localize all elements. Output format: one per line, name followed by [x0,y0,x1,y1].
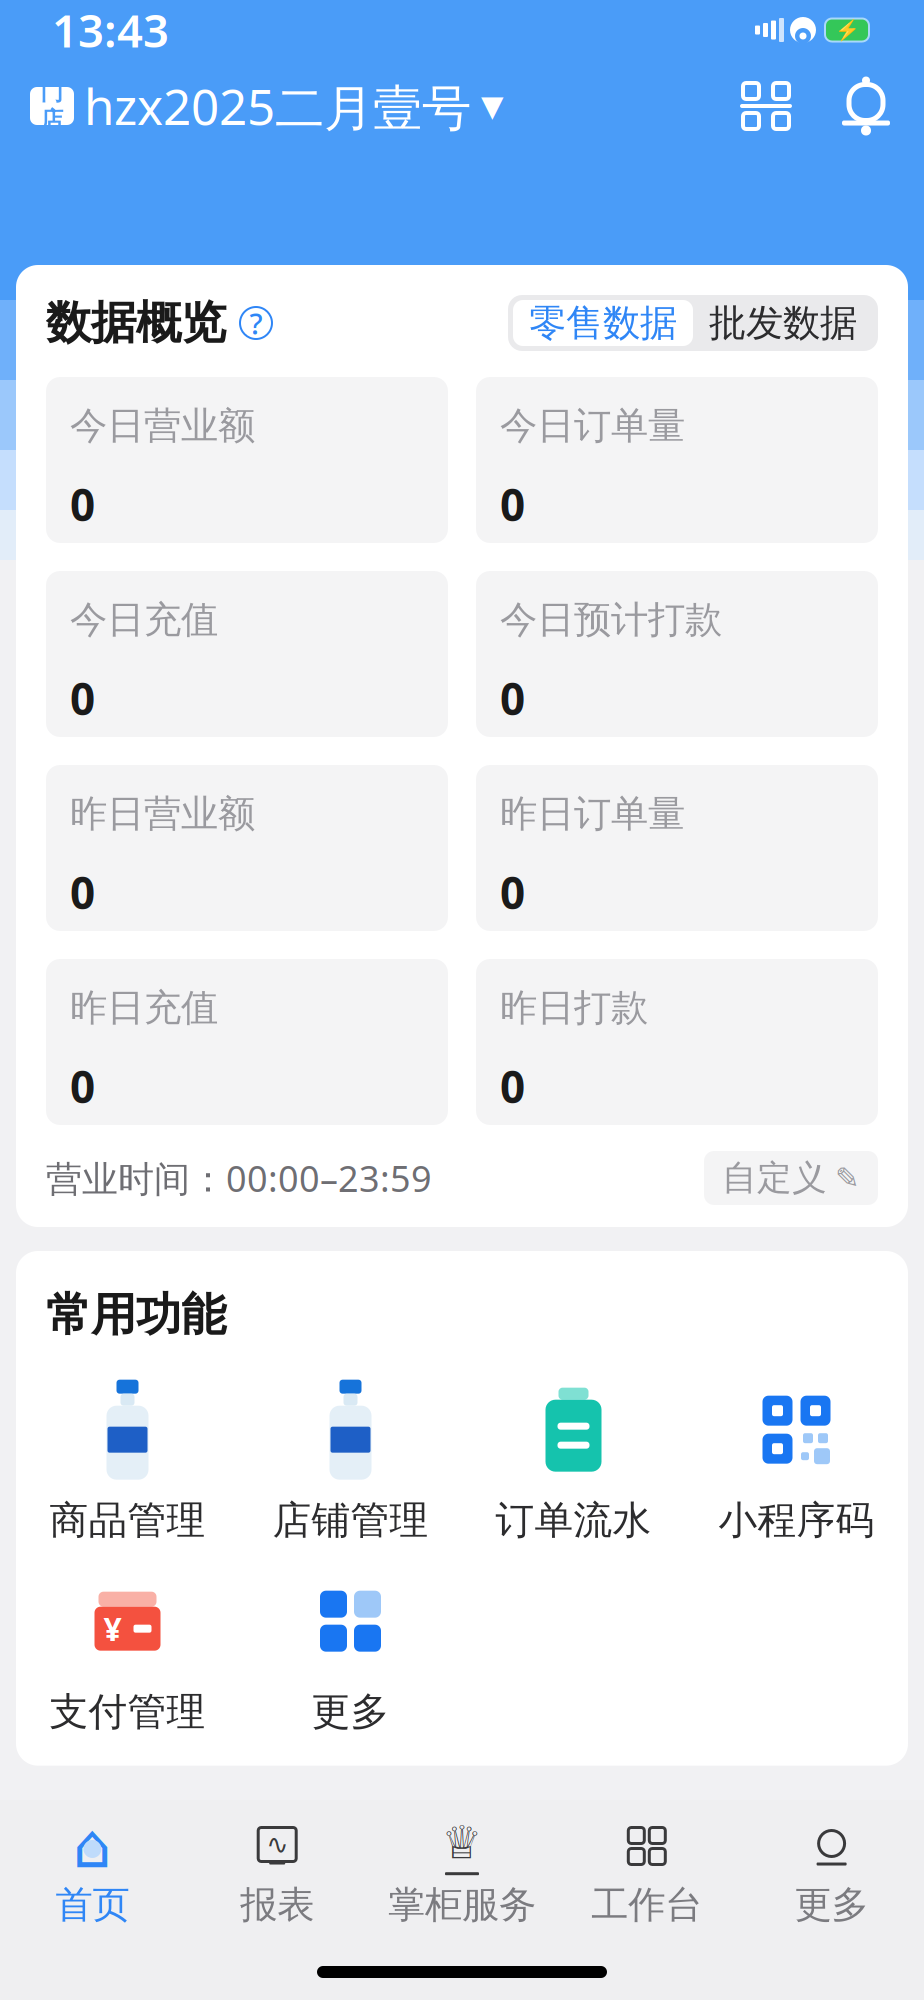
button[interactable]: ¥ [16,1568,239,1736]
staticText: 报表 [240,1882,314,1928]
staticText: 0 [70,475,95,533]
staticText: ✎ [835,1161,860,1195]
staticText: 常用功能 [46,1287,226,1343]
staticText: 更多 [795,1882,869,1928]
staticText: 订单流水 [495,1497,651,1544]
staticText: ? [249,303,262,342]
button[interactable]: 通知 [838,77,894,135]
staticText: 今日营业额 [70,403,255,449]
staticText: 门店 [40,78,63,134]
staticText: 小程序码 [718,1497,874,1544]
staticText: ⌂ [73,1811,112,1881]
button[interactable]: ⌂ [0,1800,185,1938]
button[interactable]: 工作台 [554,1800,739,1938]
staticText: 更多 [311,1688,389,1736]
staticText: 工作台 [591,1882,702,1928]
staticText: 批发数据 [709,300,857,346]
staticText: 今日订单量 [500,403,685,449]
staticText: 支付管理 [49,1688,205,1736]
staticText: 昨日充值 [70,985,218,1031]
button[interactable]: 扫一扫 [738,78,794,134]
button[interactable]: 批发数据 [693,300,873,346]
staticText: 店铺管理 [272,1497,428,1544]
staticText: 首页 [55,1882,129,1928]
button[interactable]: 小程序码 [685,1377,908,1544]
staticText: 0 [500,863,525,921]
staticText: 营业时间：00:00–23:59 [46,1154,432,1202]
button[interactable]: 帮助 [240,307,272,339]
staticText: ♕ [441,1817,482,1868]
staticText: 0 [70,669,95,727]
staticText: 今日预计打款 [500,597,722,643]
staticText: ▼ [481,89,504,123]
button[interactable]: 门店 [30,73,504,139]
staticText: ∿ [266,1829,288,1860]
staticText: 今日充值 [70,597,218,643]
staticText: hzx2025二月壹号 [84,73,471,139]
staticText: 昨日营业额 [70,791,255,837]
staticText: 13:43 [52,0,169,60]
staticText: 零售数据 [529,300,677,346]
staticText: 0 [70,1057,95,1115]
staticText: ¥ [103,1607,121,1650]
staticText: 0 [70,863,95,921]
button[interactable]: 更多 [239,1568,462,1736]
staticText: 自定义 [722,1157,827,1199]
staticText: ⚡ [834,19,859,41]
button[interactable]: ∿ [185,1800,370,1938]
staticText: 掌柜服务 [388,1882,536,1928]
button[interactable]: 零售数据 [513,300,693,346]
staticText: 昨日打款 [500,985,648,1031]
button[interactable]: 订单流水 [462,1377,685,1544]
button[interactable]: 店铺管理 [239,1377,462,1544]
staticText: 商品管理 [49,1497,205,1544]
button[interactable]: 商品管理 [16,1377,239,1544]
staticText: 昨日订单量 [500,791,685,837]
staticText: 0 [500,669,525,727]
staticText: 数据概览 [46,295,226,351]
button[interactable]: ♕ [370,1800,554,1938]
staticText: 0 [500,475,525,533]
button[interactable]: 更多 [739,1800,924,1938]
staticText: 0 [500,1057,525,1115]
button[interactable]: 自定义 [704,1151,878,1205]
